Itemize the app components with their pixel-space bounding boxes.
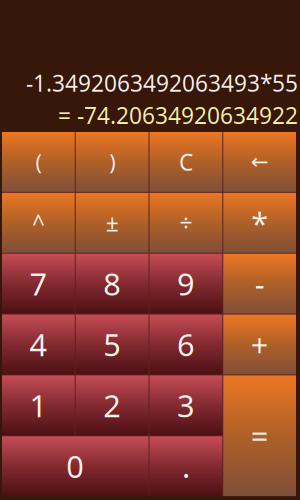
staticText: 8 <box>103 263 121 304</box>
button[interactable]: 2 <box>76 375 149 435</box>
staticText: ± <box>106 208 119 238</box>
button[interactable]: Plus <box>223 315 296 374</box>
staticText: - <box>255 263 265 304</box>
staticText: C <box>179 147 193 177</box>
button[interactable]: Multiply <box>223 193 296 253</box>
staticText: 0 <box>66 446 84 486</box>
staticText: = <box>251 415 269 456</box>
staticText: 9 <box>177 263 195 304</box>
staticText: ÷ <box>179 208 192 238</box>
button[interactable]: 0 <box>2 436 148 496</box>
staticText: ( <box>35 148 41 176</box>
button[interactable]: 9 <box>149 254 222 314</box>
staticText: 5 <box>103 324 121 365</box>
button[interactable]: 1 <box>2 375 75 435</box>
button[interactable]: Decimal point <box>149 436 222 496</box>
staticText: 7 <box>29 263 47 304</box>
button[interactable]: 6 <box>149 315 222 374</box>
button[interactable]: 5 <box>76 315 149 374</box>
staticText: 6 <box>177 324 195 365</box>
staticText: = -74.20634920634922 <box>58 100 298 130</box>
button[interactable]: 3 <box>149 375 222 435</box>
button[interactable]: 7 <box>2 254 75 314</box>
button[interactable]: 4 <box>2 315 75 374</box>
staticText: ← <box>251 150 269 174</box>
button[interactable]: ( <box>2 132 75 192</box>
staticText: + <box>251 324 269 365</box>
button[interactable]: C <box>149 132 222 192</box>
button[interactable]: Plus minus <box>76 193 149 253</box>
staticText: . <box>182 446 190 486</box>
staticText: ) <box>109 148 115 176</box>
button[interactable]: 8 <box>76 254 149 314</box>
staticText: 3 <box>177 385 195 426</box>
button[interactable]: ) <box>76 132 149 192</box>
staticText: 1 <box>29 385 47 426</box>
button[interactable]: Backspace <box>223 132 296 192</box>
staticText: 2 <box>103 385 121 426</box>
staticText: ^ <box>32 208 45 238</box>
button[interactable]: Minus <box>223 254 296 314</box>
staticText: * <box>251 202 268 243</box>
button[interactable]: Power <box>2 193 75 253</box>
staticText: -1.3492063492063493*55 <box>26 68 298 98</box>
button[interactable]: Divide <box>149 193 222 253</box>
button[interactable]: Equals <box>223 375 296 496</box>
staticText: 4 <box>29 324 47 365</box>
